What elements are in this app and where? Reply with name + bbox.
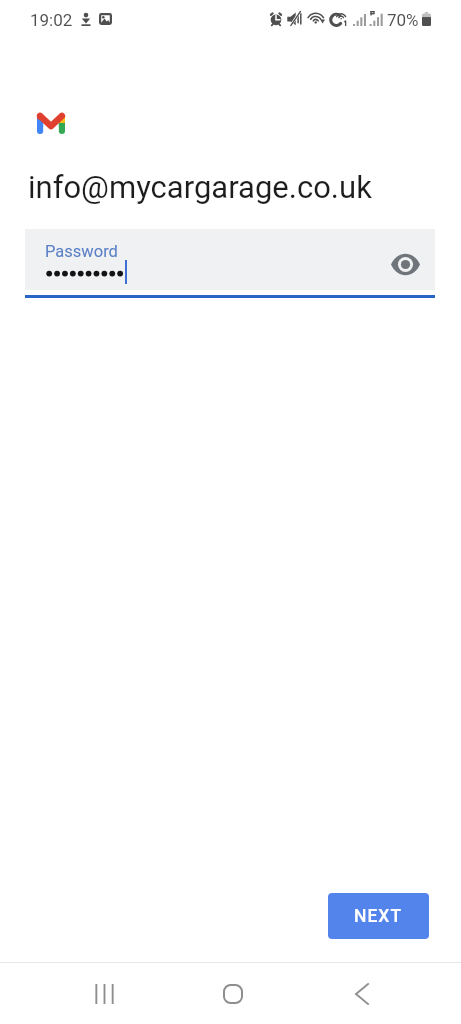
button[interactable]: Back	[332, 964, 392, 1024]
button[interactable]: NEXT	[328, 893, 429, 939]
button[interactable]: Show password	[383, 244, 427, 284]
staticText: 70%	[387, 10, 419, 30]
staticText: Password	[45, 242, 118, 261]
staticText: NEXT	[354, 906, 403, 927]
button[interactable]: Home	[203, 964, 263, 1024]
staticText: info@mycargarage.co.uk	[28, 169, 372, 205]
staticText: 19:02	[30, 10, 73, 30]
button[interactable]: Recent apps	[74, 964, 134, 1024]
